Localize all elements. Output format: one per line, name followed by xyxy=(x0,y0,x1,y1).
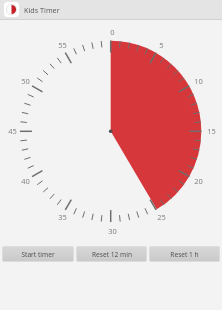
staticText: Kids Timer xyxy=(24,5,60,15)
staticText: Reset 1 h xyxy=(170,250,199,259)
staticText: 55 xyxy=(58,40,67,50)
staticText: 40 xyxy=(21,176,30,186)
staticText: 10 xyxy=(194,76,203,86)
staticText: 25 xyxy=(157,212,166,222)
staticText: 5 xyxy=(159,40,164,50)
staticText: 15 xyxy=(207,126,216,136)
staticText: 50 xyxy=(21,76,30,86)
button[interactable]: Start timer xyxy=(3,247,73,261)
staticText: 35 xyxy=(58,212,67,222)
staticText: Start timer xyxy=(21,250,55,259)
button[interactable]: Reset 1 h xyxy=(150,247,219,261)
staticText: 20 xyxy=(194,176,203,186)
staticText: 30 xyxy=(108,226,117,236)
staticText: 0 xyxy=(110,27,115,37)
staticText: 45 xyxy=(8,126,17,136)
staticText: Reset 12 min xyxy=(92,250,132,259)
button[interactable]: Reset 12 min xyxy=(77,247,146,261)
other: Kids Timer app icon xyxy=(4,2,19,17)
